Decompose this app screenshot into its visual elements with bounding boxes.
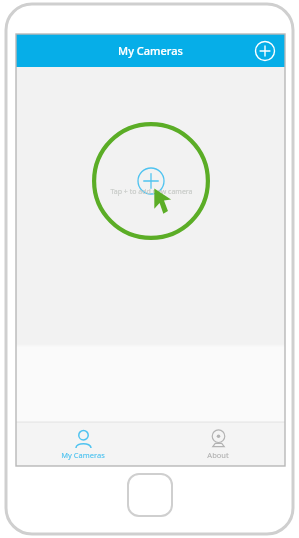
button[interactable]: Add new camera xyxy=(92,122,210,240)
button[interactable]: My Cameras xyxy=(16,422,150,466)
button[interactable]: About xyxy=(150,422,285,466)
staticText: My Cameras xyxy=(118,43,183,58)
staticText: My Cameras xyxy=(61,450,105,460)
staticText: About xyxy=(207,450,229,460)
staticText: Tap + to add new camera xyxy=(110,187,193,197)
button[interactable]: Add camera xyxy=(253,39,277,63)
button[interactable]: Home xyxy=(128,474,172,516)
